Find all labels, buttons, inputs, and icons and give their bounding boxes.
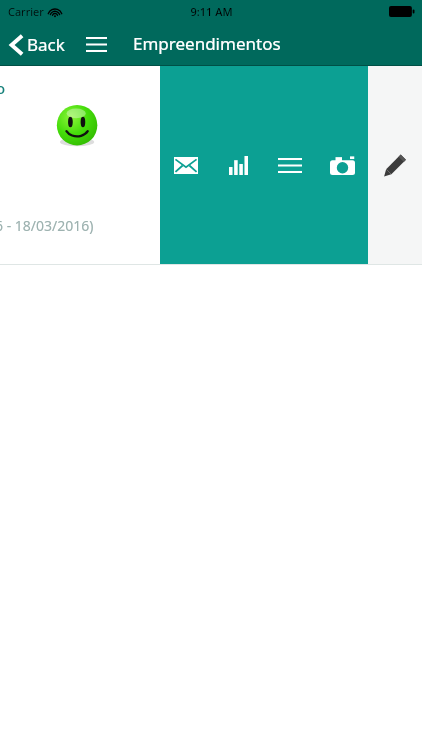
button[interactable]: Camera: [316, 66, 368, 264]
button[interactable]: Menu: [80, 31, 113, 58]
staticText: Back: [27, 33, 65, 56]
button[interactable]: List: [264, 66, 316, 264]
button[interactable]: Statistics: [212, 66, 264, 264]
button[interactable]: Email: [160, 66, 212, 264]
staticText: 6 - 18/03/2016): [0, 216, 94, 235]
staticText: o: [0, 78, 6, 98]
staticText: Carrier: [8, 4, 44, 19]
staticText: Empreendimentos: [133, 32, 281, 55]
button[interactable]: Edit: [368, 66, 422, 264]
staticText: 9:11 AM: [190, 4, 233, 19]
button[interactable]: Back: [7, 29, 68, 60]
